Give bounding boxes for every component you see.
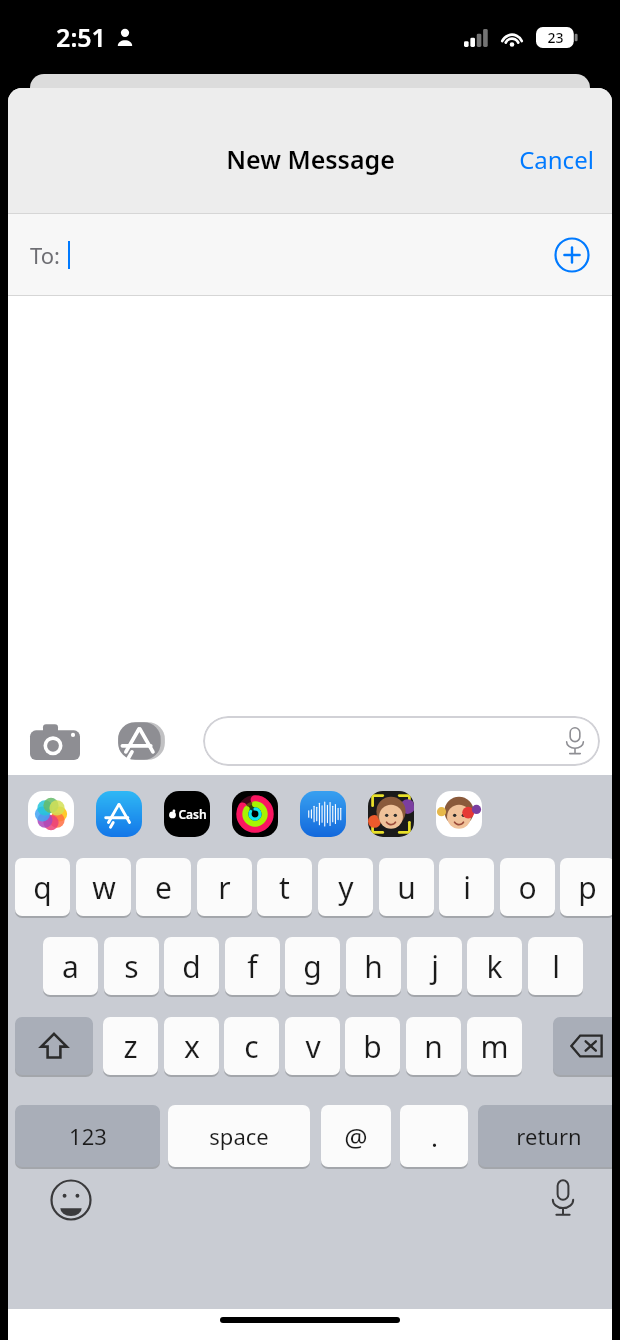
staticText: e xyxy=(155,867,172,908)
staticText: g xyxy=(303,946,322,987)
button[interactable]: e xyxy=(136,858,191,916)
button[interactable]: Dictate xyxy=(203,716,600,766)
button[interactable]: i xyxy=(439,858,494,916)
staticText: @ xyxy=(344,1119,368,1154)
staticText: m xyxy=(480,1026,509,1067)
button[interactable]: d xyxy=(164,937,219,995)
staticText: l xyxy=(552,946,560,987)
staticText: return xyxy=(516,1121,582,1151)
button[interactable]: v xyxy=(285,1017,340,1075)
button[interactable]: Emoji xyxy=(50,1179,92,1221)
button[interactable]: g xyxy=(285,937,340,995)
button[interactable]: o xyxy=(500,858,555,916)
staticText: c xyxy=(244,1026,259,1067)
staticText: b xyxy=(363,1026,382,1067)
button[interactable]: Backspace xyxy=(553,1017,612,1075)
button[interactable]: space xyxy=(168,1105,310,1167)
staticText: space xyxy=(209,1121,269,1151)
button[interactable]: iMessage app xyxy=(164,791,210,837)
staticText: f xyxy=(247,946,258,987)
button[interactable]: b xyxy=(345,1017,400,1075)
button[interactable]: To: xyxy=(8,214,612,296)
staticText: 23 xyxy=(547,28,564,47)
staticText: To: xyxy=(30,240,60,270)
staticText: q xyxy=(33,867,52,908)
staticText: 123 xyxy=(69,1121,107,1151)
other: Dictate xyxy=(564,726,586,756)
button[interactable]: Camera xyxy=(28,720,82,762)
staticText: r xyxy=(218,867,231,908)
button[interactable]: n xyxy=(406,1017,461,1075)
staticText: h xyxy=(364,946,383,987)
staticText: t xyxy=(279,867,290,908)
button[interactable]: iMessage app xyxy=(300,791,346,837)
button[interactable]: iMessage app xyxy=(436,791,482,837)
button[interactable]: w xyxy=(76,858,131,916)
button[interactable]: @ xyxy=(321,1105,391,1167)
staticText: . xyxy=(431,1119,438,1154)
button[interactable]: k xyxy=(467,937,522,995)
staticText: s xyxy=(124,946,139,987)
button[interactable]: iMessage app xyxy=(28,791,74,837)
button[interactable]: x xyxy=(164,1017,219,1075)
button[interactable]: u xyxy=(379,858,434,916)
staticText: n xyxy=(424,1026,443,1067)
staticText: Cash xyxy=(178,806,207,822)
staticText: u xyxy=(397,867,416,908)
button[interactable]: h xyxy=(346,937,401,995)
button[interactable]: iMessage app xyxy=(368,791,414,837)
button[interactable]: Add contact xyxy=(554,237,590,273)
button[interactable]: a xyxy=(43,937,98,995)
staticText: v xyxy=(305,1026,321,1067)
button[interactable]: Cancel xyxy=(501,133,612,186)
button[interactable]: t xyxy=(257,858,312,916)
button[interactable]: iMessage apps xyxy=(116,715,168,767)
button[interactable]: j xyxy=(407,937,462,995)
button[interactable]: 123 xyxy=(15,1105,160,1167)
button[interactable]: m xyxy=(467,1017,522,1075)
staticText: New Message xyxy=(226,142,395,176)
button[interactable]: f xyxy=(225,937,280,995)
staticText: i xyxy=(463,867,471,908)
staticText: 2:51 xyxy=(56,20,106,54)
button[interactable]: c xyxy=(224,1017,279,1075)
button[interactable]: z xyxy=(103,1017,158,1075)
staticText: d xyxy=(182,946,201,987)
staticText: a xyxy=(62,946,79,987)
button[interactable]: Dictation xyxy=(548,1177,578,1219)
button[interactable]: return xyxy=(478,1105,612,1167)
button[interactable]: Shift xyxy=(15,1017,93,1075)
staticText: k xyxy=(486,946,503,987)
button[interactable]: . xyxy=(400,1105,468,1167)
button[interactable]: l xyxy=(528,937,583,995)
staticText: p xyxy=(578,867,597,908)
button[interactable]: iMessage app xyxy=(96,791,142,837)
staticText: j xyxy=(431,946,439,987)
staticText: w xyxy=(92,867,116,908)
button[interactable]: y xyxy=(318,858,373,916)
staticText: Cancel xyxy=(519,143,594,176)
staticText: o xyxy=(518,867,537,908)
button[interactable]: s xyxy=(104,937,159,995)
staticText: z xyxy=(123,1026,138,1067)
staticText: x xyxy=(184,1026,200,1067)
staticText: y xyxy=(338,867,354,908)
button[interactable]: iMessage app xyxy=(232,791,278,837)
button[interactable]: r xyxy=(197,858,252,916)
button[interactable]: q xyxy=(15,858,70,916)
button[interactable]: p xyxy=(560,858,612,916)
